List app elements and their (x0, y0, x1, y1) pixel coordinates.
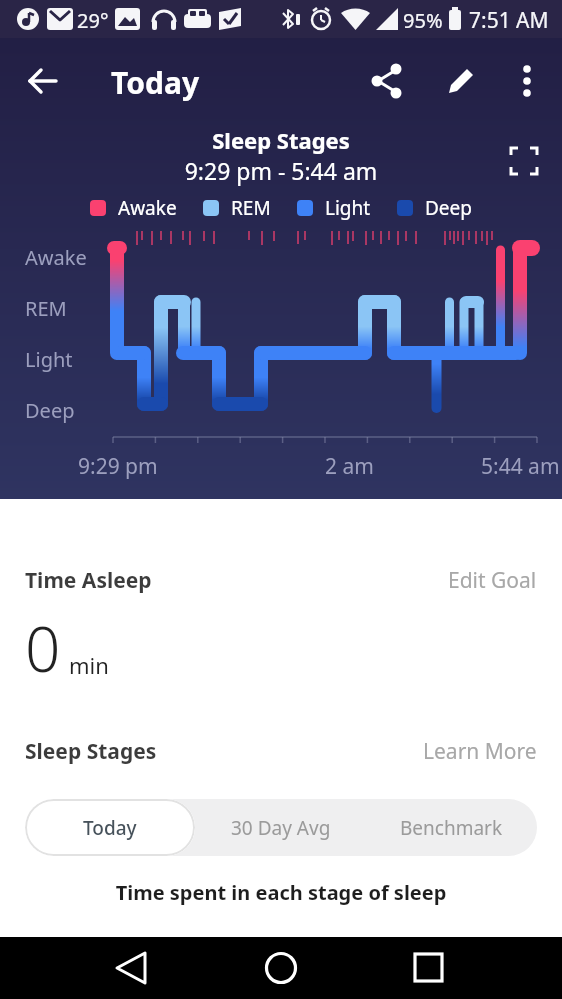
staticText: Sleep Stages (0, 125, 562, 155)
staticText: 95% (403, 7, 443, 34)
staticText: REM (231, 195, 271, 221)
staticText: Awake (25, 244, 87, 271)
staticText: 9:29 pm (78, 452, 158, 481)
staticText: Benchmark (400, 815, 503, 841)
staticText: Today (83, 815, 137, 841)
staticText: 9:29 pm - 5:44 am (0, 155, 562, 186)
staticText: 7:51 AM (469, 6, 549, 35)
staticText: Time spent in each stage of sleep (0, 879, 562, 906)
button[interactable] (19, 57, 67, 105)
staticText: 2 am (325, 452, 374, 481)
button[interactable]: Edit Goal (448, 566, 537, 595)
button[interactable] (102, 937, 164, 999)
button[interactable] (250, 937, 312, 999)
staticText: 0 (25, 606, 61, 690)
button[interactable] (503, 57, 551, 105)
staticText: Deep (25, 397, 75, 424)
staticText: min (69, 650, 109, 680)
staticText: Light (25, 346, 73, 373)
button[interactable]: Today (25, 799, 195, 856)
button[interactable]: Learn More (423, 737, 537, 766)
staticText: 5:44 am (481, 452, 560, 481)
button[interactable]: 30 Day Avg (195, 799, 366, 856)
staticText: 30 Day Avg (231, 815, 331, 841)
staticText: Awake (118, 195, 177, 221)
button[interactable] (363, 57, 411, 105)
staticText: Time Asleep (25, 566, 152, 595)
staticText: 29° (77, 7, 109, 34)
staticText: Light (325, 195, 371, 221)
button[interactable] (398, 937, 460, 999)
button[interactable] (501, 138, 547, 184)
button[interactable] (437, 57, 485, 105)
staticText: Deep (425, 195, 472, 221)
staticText: REM (25, 295, 67, 322)
staticText: Today (111, 62, 200, 103)
staticText: Sleep Stages (25, 737, 157, 766)
button[interactable]: Benchmark (366, 799, 537, 856)
